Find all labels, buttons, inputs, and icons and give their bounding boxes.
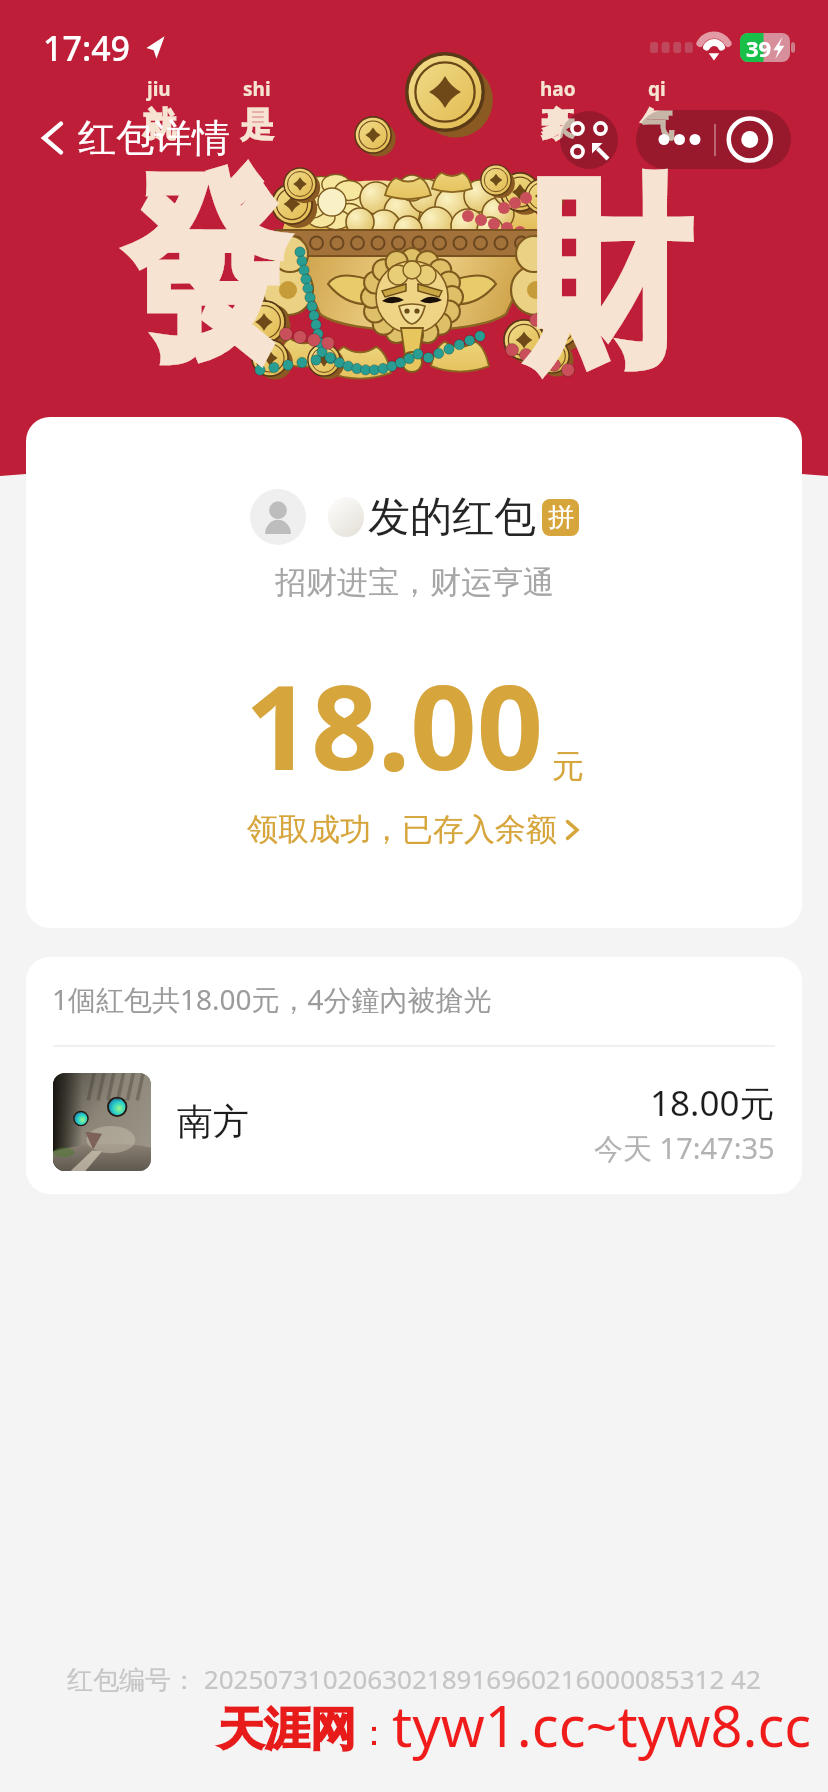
staticText: 是	[240, 103, 274, 145]
button[interactable]: 南方	[53, 1049, 775, 1194]
staticText: 拼	[548, 501, 574, 534]
staticText: 1個紅包共18.00元，4分鐘內被搶光	[52, 980, 492, 1018]
staticText: 17:49	[43, 25, 131, 71]
staticText: 领取成功，已存入余额	[247, 810, 557, 849]
button[interactable]: More options	[636, 110, 714, 169]
staticText: 招财进宝，财运亨通	[275, 563, 554, 602]
button[interactable]: 红包详情	[38, 114, 230, 162]
button[interactable]: 发的红包	[250, 489, 579, 545]
staticText: 39	[746, 33, 772, 62]
staticText: shi	[243, 76, 271, 102]
staticText: hao	[540, 76, 576, 102]
button[interactable]: 领取成功，已存入余额	[235, 804, 593, 855]
staticText: 气	[640, 103, 674, 145]
staticText: 元	[552, 746, 584, 786]
staticText: 18.00	[245, 646, 544, 804]
staticText: ：	[356, 1710, 392, 1755]
staticText: 財	[528, 150, 688, 402]
button[interactable]: Share	[560, 111, 618, 169]
staticText: 红包编号： 2025073102063021891696021600008531…	[67, 1661, 761, 1697]
staticText: qi	[648, 76, 666, 102]
staticText: 南方	[177, 1099, 249, 1144]
staticText: 天涯网	[218, 1701, 356, 1759]
staticText: jiu	[147, 76, 171, 102]
staticText: 豪	[541, 103, 575, 145]
staticText: 就	[142, 103, 176, 145]
staticText: 发的红包	[368, 491, 536, 544]
staticText: 今天 17:47:35	[594, 1128, 775, 1168]
staticText: 红包详情	[78, 114, 230, 162]
staticText: tyw1.cc~tyw8.cc	[392, 1687, 812, 1763]
staticText: 發	[126, 144, 286, 396]
staticText: 18.00元	[650, 1079, 775, 1127]
button[interactable]: Close	[716, 110, 791, 169]
